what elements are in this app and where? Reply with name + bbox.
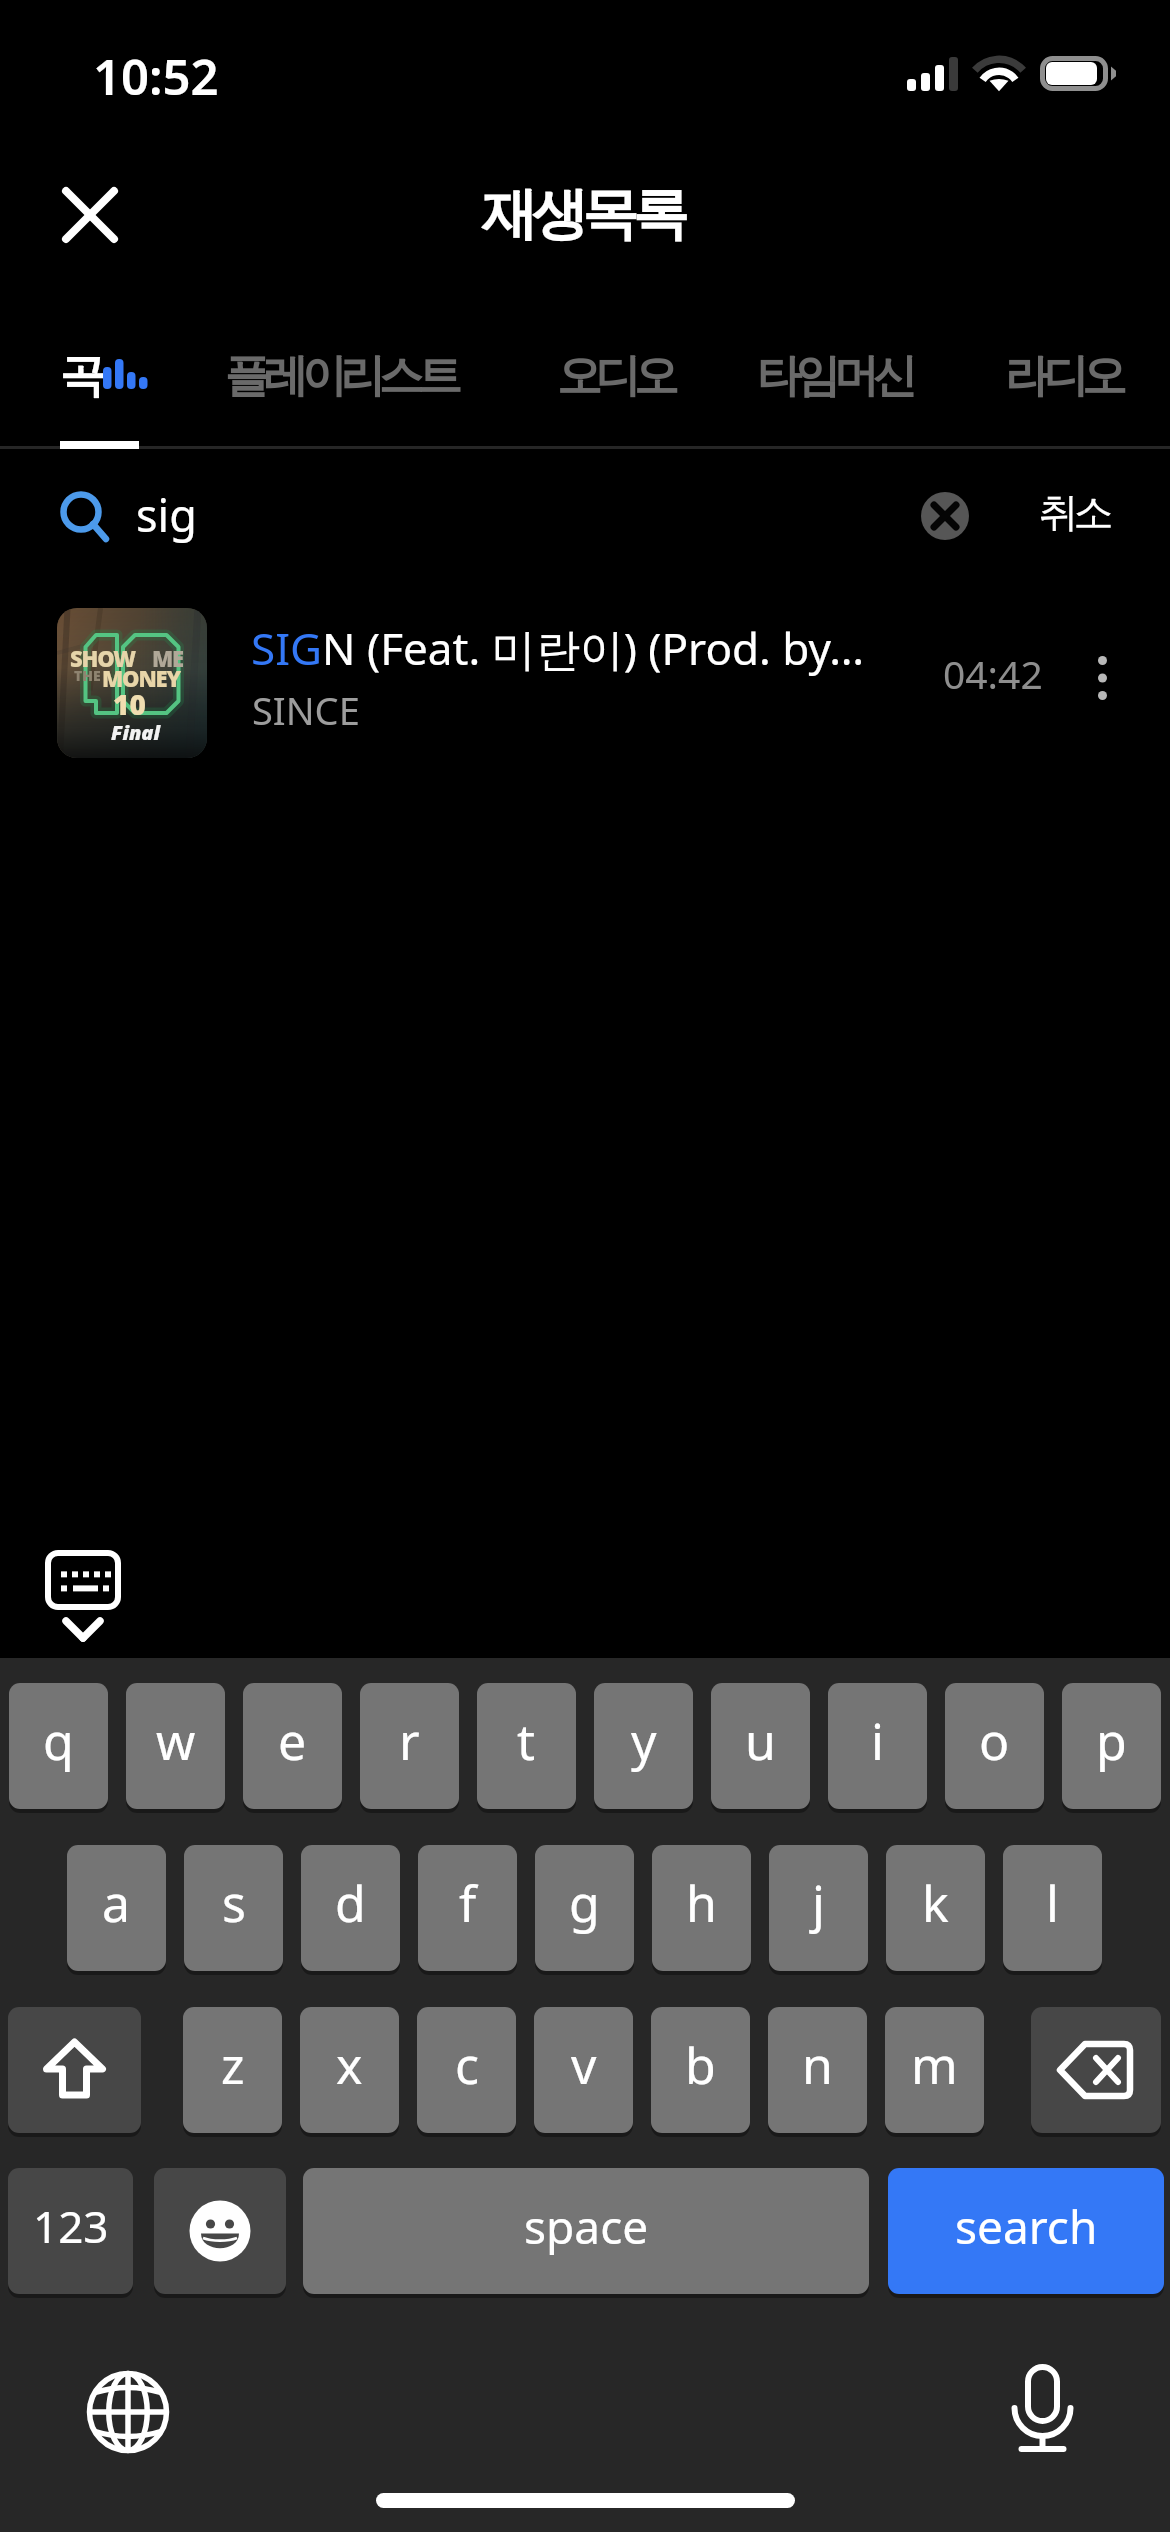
button[interactable]: Emoji xyxy=(154,2168,286,2294)
staticText: ME xyxy=(152,643,183,673)
staticText: m xyxy=(911,2031,958,2099)
staticText: MONEY xyxy=(102,663,180,693)
button[interactable]: Shift xyxy=(8,2007,141,2133)
button[interactable]: j xyxy=(769,1845,868,1971)
staticText: SINCE xyxy=(252,684,360,736)
button[interactable]: a xyxy=(67,1845,166,1971)
staticText: r xyxy=(399,1707,420,1775)
button[interactable]: More options xyxy=(1068,634,1136,718)
staticText: j xyxy=(812,1869,825,1937)
button[interactable]: h xyxy=(652,1845,751,1971)
button[interactable]: 오디오 xyxy=(557,330,673,448)
button[interactable]: Dictation xyxy=(1008,2358,1078,2468)
button[interactable]: l xyxy=(1003,1845,1102,1971)
button[interactable]: o xyxy=(945,1683,1044,1809)
staticText: i xyxy=(871,1707,884,1775)
staticText: 123 xyxy=(33,2196,109,2256)
button[interactable]: 라디오 xyxy=(1005,330,1121,448)
button[interactable]: space xyxy=(303,2168,869,2294)
button[interactable]: g xyxy=(535,1845,634,1971)
staticText: search xyxy=(955,2195,1098,2258)
button[interactable]: 곡 xyxy=(60,330,99,448)
staticText: 라디오 xyxy=(1005,348,1121,405)
button[interactable]: s xyxy=(184,1845,283,1971)
staticText: c xyxy=(455,2031,479,2099)
staticText: 10:52 xyxy=(93,43,219,110)
button[interactable]: 플레이리스트 xyxy=(228,330,459,448)
staticText: g xyxy=(569,1869,600,1937)
button[interactable]: n xyxy=(768,2007,867,2133)
button[interactable]: w xyxy=(126,1683,225,1809)
button[interactable]: c xyxy=(417,2007,516,2133)
staticText: l xyxy=(1046,1869,1059,1937)
button[interactable]: x xyxy=(300,2007,399,2133)
button[interactable]: i xyxy=(828,1683,927,1809)
staticText: THE xyxy=(74,666,101,685)
staticText: o xyxy=(979,1707,1010,1775)
button[interactable]: search xyxy=(888,2168,1164,2294)
button[interactable]: z xyxy=(183,2007,282,2133)
button[interactable]: Clear text xyxy=(911,482,979,550)
button[interactable]: r xyxy=(360,1683,459,1809)
staticText: z xyxy=(221,2031,245,2099)
staticText: 곡 xyxy=(60,348,99,405)
staticText: u xyxy=(745,1707,776,1775)
staticText: y xyxy=(631,1707,657,1775)
button[interactable]: v xyxy=(534,2007,633,2133)
staticText: n xyxy=(802,2031,833,2099)
button[interactable]: 취소 xyxy=(1020,472,1132,552)
staticText: 타임머신 xyxy=(760,348,914,405)
staticText: Final xyxy=(111,719,160,746)
button[interactable]: d xyxy=(301,1845,400,1971)
button[interactable]: y xyxy=(594,1683,693,1809)
staticText: k xyxy=(922,1869,949,1937)
staticText: sig xyxy=(136,484,197,545)
button[interactable]: f xyxy=(418,1845,517,1971)
staticText: a xyxy=(102,1869,131,1937)
staticText: h xyxy=(686,1869,717,1937)
staticText: q xyxy=(43,1707,74,1775)
button[interactable]: k xyxy=(886,1845,985,1971)
button[interactable]: SHOW xyxy=(0,594,1170,770)
staticText: s xyxy=(222,1869,246,1937)
staticText: t xyxy=(517,1707,536,1775)
button[interactable]: e xyxy=(243,1683,342,1809)
staticText: 플레이리스트 xyxy=(228,348,459,405)
button[interactable]: m xyxy=(885,2007,984,2133)
button[interactable]: q xyxy=(9,1683,108,1809)
staticText: 04:42 xyxy=(943,647,1043,700)
staticText: x xyxy=(336,2031,363,2099)
button[interactable]: u xyxy=(711,1683,810,1809)
staticText: SHOW xyxy=(70,643,135,673)
staticText: 취소 xyxy=(1041,487,1111,537)
staticText: 재생목록 xyxy=(484,179,686,250)
button[interactable]: 123 xyxy=(8,2168,133,2294)
staticText: f xyxy=(459,1869,477,1937)
staticText: SIGN (Feat. 미란이) (Prod. by… xyxy=(251,618,911,678)
staticText: e xyxy=(278,1707,307,1775)
staticText: space xyxy=(524,2195,649,2258)
staticText: d xyxy=(335,1869,366,1937)
button[interactable]: Change keyboard xyxy=(82,2366,174,2458)
button[interactable]: Close xyxy=(32,158,148,272)
staticText: w xyxy=(156,1707,196,1775)
staticText: v xyxy=(571,2031,597,2099)
button[interactable]: t xyxy=(477,1683,576,1809)
button[interactable]: Backspace xyxy=(1031,2007,1161,2133)
staticText: 10 xyxy=(113,685,146,723)
staticText: 오디오 xyxy=(557,348,673,405)
staticText: b xyxy=(685,2031,716,2099)
button[interactable]: p xyxy=(1062,1683,1161,1809)
button[interactable]: b xyxy=(651,2007,750,2133)
button[interactable]: Hide keyboard xyxy=(40,1540,156,1656)
staticText: p xyxy=(1096,1707,1127,1775)
button[interactable]: 타임머신 xyxy=(760,330,914,448)
